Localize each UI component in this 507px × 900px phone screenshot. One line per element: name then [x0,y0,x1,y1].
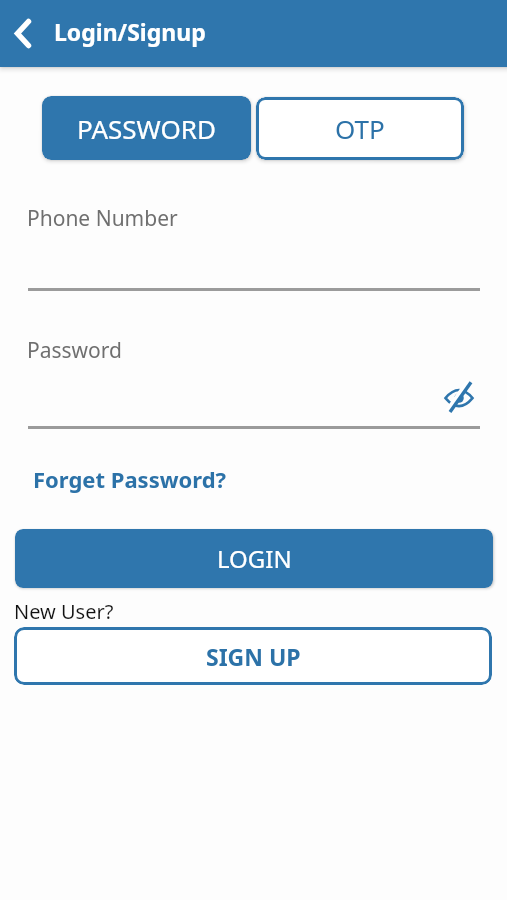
button[interactable]: Forget Password? [33,464,227,494]
button[interactable]: SIGN UP [14,627,492,685]
staticText: Phone Number [27,204,178,233]
button[interactable] [8,12,44,54]
button[interactable]: PASSWORD [42,96,251,160]
staticText: Login/Signup [54,16,206,47]
button[interactable]: LOGIN [15,529,493,588]
staticText: PASSWORD [77,111,216,146]
staticText: Password [27,336,122,365]
staticText: SIGN UP [206,641,301,672]
staticText: New User? [14,598,114,625]
button[interactable]: OTP [256,97,464,160]
staticText: LOGIN [217,542,292,575]
button[interactable] [444,381,474,412]
staticText: OTP [335,111,385,146]
